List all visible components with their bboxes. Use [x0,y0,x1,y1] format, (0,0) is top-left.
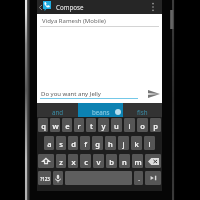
button[interactable]: k [131,136,142,150]
staticText: m [134,157,142,167]
button[interactable]: z [56,154,66,168]
button[interactable]: b [106,154,117,168]
button[interactable]: w [50,118,60,132]
staticText: f [84,139,87,149]
button[interactable]: ?123 [38,171,51,185]
button[interactable]: and [37,103,78,119]
staticText: d [71,139,76,149]
staticText: r [77,121,81,131]
staticText: e [65,121,70,131]
button[interactable]: g [92,136,103,150]
staticText: v [96,157,101,167]
staticText: Compose [56,3,84,11]
button[interactable]: i [124,118,135,132]
staticText: a [47,139,52,149]
staticText: ?123 [40,176,50,182]
staticText: x [71,157,76,167]
button[interactable]: Do you want any Jelly [37,88,162,99]
button[interactable]: fish [123,103,162,119]
staticText: Do you want any Jelly [41,90,101,98]
staticText: l [148,139,151,149]
button[interactable]: c [80,154,91,168]
button[interactable]: q [38,118,48,132]
button[interactable]: a [44,136,54,150]
button[interactable]: Vidya Ramesh (Mobile) [37,14,162,27]
staticText: y [101,121,106,131]
button[interactable]: o [137,118,148,132]
button[interactable]: e [62,118,72,132]
staticText: n [122,157,127,167]
button[interactable]: y [98,118,109,132]
button[interactable]: Send [145,88,162,99]
staticText: and [52,108,64,116]
staticText: j [122,139,125,149]
button[interactable]: . [134,171,143,185]
button[interactable]: r [74,118,84,132]
staticText: c [84,157,88,167]
button[interactable]: t [86,118,96,132]
button[interactable]: m [132,154,143,168]
button[interactable] [53,171,63,185]
button[interactable]: More options [148,0,158,14]
button[interactable]: l [144,136,155,150]
button[interactable]: Messaging [43,0,54,14]
button[interactable]: j [118,136,129,150]
staticText: z [59,157,63,167]
button[interactable]: n [119,154,130,168]
button[interactable]: Navigate up [37,0,44,14]
staticText: s [59,139,63,149]
staticText: beans [92,108,110,116]
button[interactable] [145,154,161,168]
staticText: k [134,139,139,149]
staticText: g [95,139,100,149]
button[interactable]: beans [78,103,123,119]
staticText: u [114,121,119,131]
staticText: b [109,157,114,167]
button[interactable]: f [80,136,90,150]
button[interactable]: s [56,136,66,150]
staticText: w [52,121,59,131]
button[interactable]: v [93,154,104,168]
button[interactable]: p [150,118,161,132]
staticText: fish [137,108,148,116]
button[interactable]: u [111,118,122,132]
staticText: h [108,139,113,149]
button[interactable]: x [68,154,78,168]
staticText: . [138,175,140,183]
button[interactable]: d [68,136,78,150]
button[interactable]: h [105,136,116,150]
staticText: o [140,121,145,131]
staticText: i [128,121,131,131]
staticText: t [90,121,93,131]
button[interactable] [38,154,54,168]
button[interactable] [145,171,161,185]
staticText: Vidya Ramesh (Mobile) [42,17,106,25]
staticText: p [153,121,158,131]
staticText: q [41,121,46,131]
